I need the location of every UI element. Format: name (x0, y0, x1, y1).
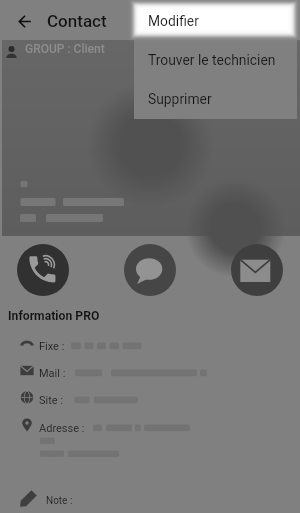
staticText: GROUP : Client (25, 42, 105, 56)
button[interactable]: Appeler (17, 244, 69, 296)
staticText: Modifier (148, 13, 199, 29)
button[interactable]: Fixe : (0, 336, 300, 363)
staticText: Adresse : (39, 422, 85, 435)
button[interactable]: Envoyer un message (124, 244, 176, 296)
button[interactable]: Modifier (134, 1, 297, 40)
button[interactable]: Adresse : (0, 418, 300, 445)
staticText: Information PRO (8, 309, 100, 323)
staticText: Supprimer (148, 91, 212, 107)
button[interactable]: Supprimer (134, 79, 297, 118)
staticText: Mail : (39, 367, 66, 380)
staticText: Site : (39, 394, 64, 407)
staticText: Contact (47, 11, 107, 31)
staticText: Modifier (148, 13, 199, 29)
staticText: Note : (46, 495, 73, 507)
button[interactable]: Note : (0, 487, 300, 513)
staticText: Fixe : (39, 340, 65, 353)
button[interactable]: Site : (0, 390, 300, 417)
button[interactable]: Mail : (0, 363, 300, 390)
button[interactable]: Envoyer un e-mail (231, 244, 283, 296)
button[interactable]: Trouver le technicien (134, 40, 297, 79)
button[interactable]: Retour (5, 2, 43, 40)
staticText: Trouver le technicien (148, 52, 276, 68)
button[interactable]: Modifier (134, 1, 297, 40)
